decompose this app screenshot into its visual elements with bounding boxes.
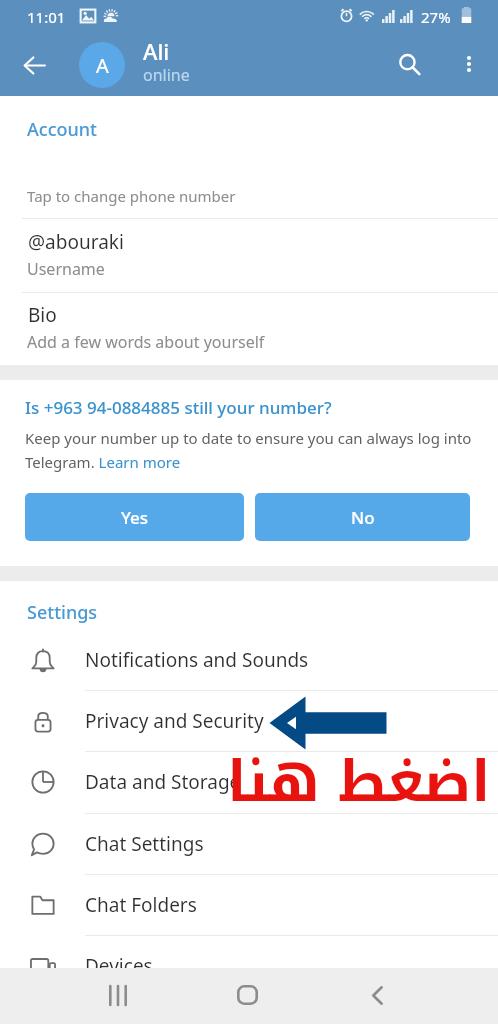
button[interactable]: A (79, 42, 125, 88)
staticText: Tap to change phone number (27, 186, 236, 206)
button[interactable]: Home (188, 968, 306, 1024)
staticText: @abouraki (28, 229, 124, 255)
staticText: Username (27, 258, 105, 280)
staticText: Notifications and Sounds (85, 647, 309, 673)
button[interactable]: Data and Storage (0, 752, 498, 812)
staticText: Bio (28, 302, 57, 328)
staticText: 11:01 (27, 7, 66, 27)
button[interactable]: Yes (25, 493, 244, 541)
staticText: Add a few words about yourself (27, 331, 265, 353)
staticText: Keep your number up to date to ensure yo… (25, 428, 477, 472)
staticText: Chat Folders (85, 892, 197, 918)
staticText: No (351, 506, 375, 529)
button[interactable]: No (255, 493, 470, 541)
button[interactable]: Privacy and Security (0, 691, 498, 751)
button[interactable]: Search (386, 41, 432, 87)
button[interactable] (0, 160, 498, 218)
button[interactable]: Recent apps (59, 968, 177, 1024)
button[interactable]: Back (317, 968, 435, 1024)
staticText: Yes (121, 506, 149, 529)
button[interactable]: Back (10, 41, 58, 89)
button[interactable] (0, 293, 498, 366)
staticText: Data and Storage (85, 769, 241, 795)
staticText: Is +963 94-0884885 still your number? (25, 396, 332, 419)
button[interactable]: More options (446, 41, 492, 87)
button[interactable]: Devices (0, 936, 498, 996)
staticText: Chat Settings (85, 831, 204, 857)
staticText: Ali (143, 36, 170, 66)
button[interactable]: Notifications and Sounds (0, 630, 498, 690)
staticText: اضغط هنا (227, 729, 491, 835)
staticText: Account (27, 117, 97, 142)
staticText: online (143, 64, 190, 86)
staticText: A (96, 52, 109, 79)
staticText: 27% (421, 7, 451, 27)
staticText: Settings (27, 600, 98, 625)
staticText: Privacy and Security (85, 708, 264, 734)
staticText: Devices (85, 953, 153, 979)
button[interactable]: Chat Settings (0, 814, 498, 874)
button[interactable] (0, 219, 498, 292)
button[interactable]: Chat Folders (0, 875, 498, 935)
